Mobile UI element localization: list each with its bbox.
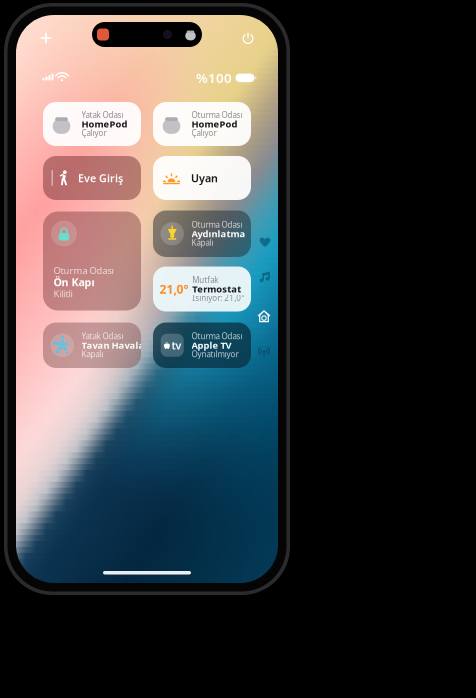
button[interactable]: Uyan xyxy=(153,156,251,200)
button[interactable]: Power xyxy=(236,26,260,50)
staticText: Oturma Odası xyxy=(53,264,113,277)
staticText: Tavan Havalandırması xyxy=(81,339,186,351)
button[interactable]: Cameras xyxy=(254,306,274,326)
button[interactable]: 21,0° xyxy=(153,266,251,311)
staticText: tv xyxy=(171,338,181,352)
staticText: Isınıyor: 21,0° xyxy=(192,293,244,303)
staticText: Mutfak xyxy=(192,275,218,285)
staticText: Yatak Odası xyxy=(81,110,123,120)
staticText: Ön Kapı xyxy=(53,275,94,289)
button[interactable]: Add xyxy=(34,26,58,50)
staticText: Termostat xyxy=(192,283,241,295)
button[interactable]: Media xyxy=(255,267,275,287)
staticText: Çalıyor xyxy=(191,128,216,138)
staticText: Aydınlatma xyxy=(191,228,245,240)
staticText: Oynatılmıyor xyxy=(191,349,238,359)
button[interactable]: Yatak Odası xyxy=(43,102,141,146)
button[interactable]: Speakers xyxy=(254,342,274,362)
staticText: %100 xyxy=(196,69,232,87)
staticText: HomePod xyxy=(191,118,237,130)
staticText: Eve Giriş xyxy=(78,171,123,185)
button[interactable]: tv xyxy=(153,322,251,368)
staticText: Oturma Odası xyxy=(191,219,242,230)
staticText: Kapalı xyxy=(191,237,213,248)
staticText: Kilitli xyxy=(53,288,72,300)
button[interactable]: Eve Giriş xyxy=(43,156,141,200)
button[interactable]: Yatak Odası xyxy=(43,322,141,368)
staticText: Apple TV xyxy=(191,339,231,351)
staticText: 21,0° xyxy=(159,281,188,297)
button[interactable]: Oturma Odası xyxy=(153,102,251,146)
staticText: Yatak Odası xyxy=(81,331,123,341)
button[interactable]: Oturma Odası xyxy=(43,211,141,310)
staticText: Oturma Odası xyxy=(191,110,242,120)
staticText: Oturma Odası xyxy=(191,331,242,341)
staticText: Kapalı xyxy=(81,349,103,359)
staticText: Çalıyor xyxy=(81,128,106,138)
button[interactable]: Favorites xyxy=(255,232,275,252)
staticText: HomePod xyxy=(81,118,127,130)
staticText: Uyan xyxy=(191,171,218,185)
button[interactable]: Oturma Odası xyxy=(153,210,251,257)
